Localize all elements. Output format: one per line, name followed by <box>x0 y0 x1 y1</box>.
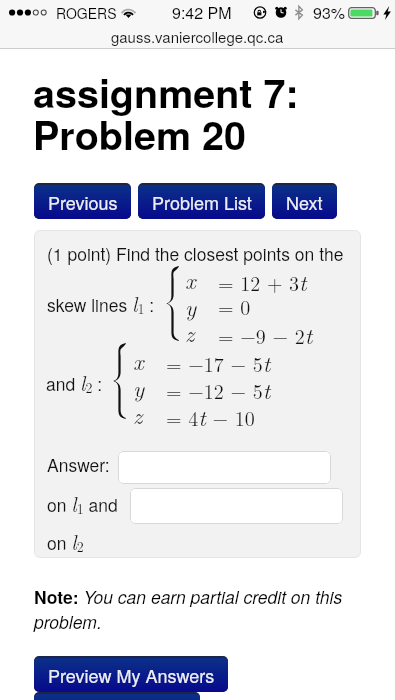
staticText: 9:42 PM <box>172 1 232 24</box>
button[interactable]: Previous <box>34 185 131 219</box>
staticText: (1 point) Find the closest points on the <box>47 241 344 266</box>
staticText: = −17 − 5t <box>166 346 271 379</box>
staticText: Problem List <box>152 189 252 215</box>
staticText: = −9 − 2t <box>218 318 313 351</box>
staticText: y <box>185 290 197 323</box>
staticText: skew lines l1 : <box>47 288 155 318</box>
staticText: z <box>185 316 195 349</box>
staticText: assignment 7: <box>33 64 299 121</box>
staticText: on l1 and <box>47 488 118 518</box>
staticText: ROGERS <box>56 3 117 23</box>
staticText: z <box>133 398 143 431</box>
staticText: = −12 − 5t <box>166 373 271 406</box>
staticText: = 12 + 3t <box>218 265 307 298</box>
button[interactable]: Preview My Answers <box>34 658 228 692</box>
staticText: Note: You can earn partial credit on thi… <box>34 584 352 634</box>
staticText: gauss.vaniercollege.qc.ca <box>111 26 284 47</box>
staticText: Previous <box>48 189 118 215</box>
staticText: = 0 <box>218 292 251 320</box>
staticText: y <box>133 371 145 404</box>
staticText: x <box>185 263 196 296</box>
button[interactable]: Check Answers <box>34 694 200 700</box>
button[interactable]: Answer input field <box>118 451 331 484</box>
staticText: on l2 <box>47 526 84 556</box>
staticText: = 4t − 10 <box>166 400 255 433</box>
staticText: Problem 20 <box>33 106 246 163</box>
staticText: 93% <box>313 1 346 24</box>
button[interactable]: Next <box>272 185 337 219</box>
button[interactable]: Problem List <box>138 185 265 219</box>
staticText: and l2 : <box>46 367 103 397</box>
staticText: x <box>133 344 144 377</box>
staticText: Answer: <box>47 452 110 477</box>
staticText: Next <box>286 189 323 215</box>
staticText: Preview My Answers <box>48 662 215 688</box>
button[interactable]: Answer input field <box>130 488 343 524</box>
